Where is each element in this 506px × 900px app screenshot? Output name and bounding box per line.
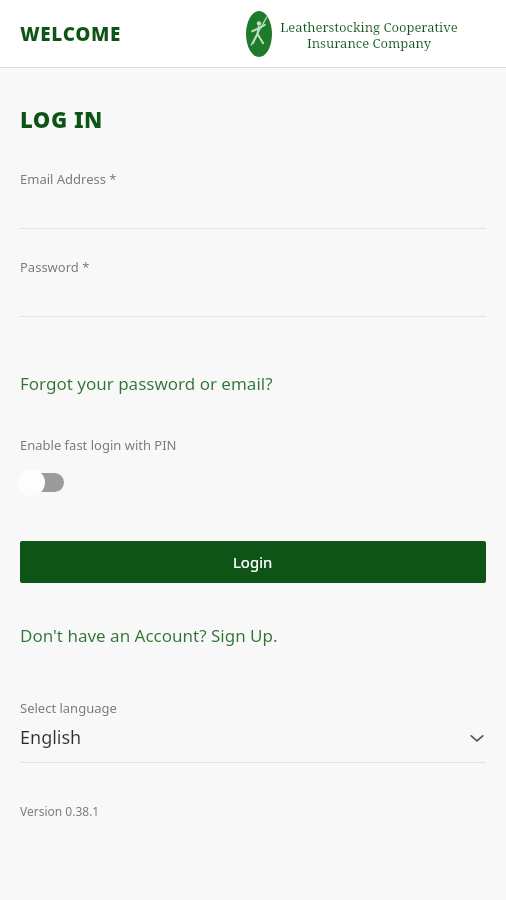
staticText: Forgot your password or email? <box>20 372 273 395</box>
staticText: LOG IN <box>20 104 103 134</box>
staticText: Email Address * <box>20 170 117 188</box>
button[interactable]: Login <box>20 541 486 583</box>
other: Leatherstocking Cooperative Insurance Co… <box>246 11 272 57</box>
staticText: Don't have an Account? Sign Up. <box>20 624 278 647</box>
other: Expand language list <box>468 729 486 747</box>
button[interactable]: Don't have an Account? Sign Up. <box>0 618 506 653</box>
button[interactable]: Email Address * <box>0 170 506 258</box>
staticText: Leatherstocking Cooperative Insurance Co… <box>280 18 458 51</box>
staticText: Version 0.38.1 <box>20 803 100 819</box>
button[interactable]: Select language <box>0 699 506 763</box>
staticText: English <box>20 725 82 750</box>
staticText: Select language <box>20 699 117 717</box>
button[interactable]: Password * <box>0 258 506 346</box>
button[interactable]: Forgot your password or email? <box>0 366 506 401</box>
staticText: WELCOME <box>20 21 121 47</box>
staticText: Login <box>233 552 273 572</box>
staticText: Password * <box>20 258 90 276</box>
button[interactable]: Enable fast login with PIN <box>18 465 70 499</box>
staticText: Enable fast login with PIN <box>20 436 177 454</box>
